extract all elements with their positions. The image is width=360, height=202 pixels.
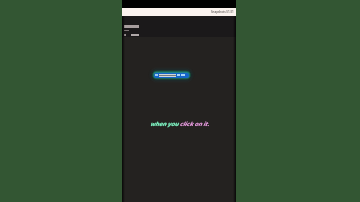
- staticText: Snapshots S1.E1: [211, 10, 234, 14]
- staticText: when you click on it.: [150, 119, 209, 129]
- button[interactable]: [154, 73, 189, 78]
